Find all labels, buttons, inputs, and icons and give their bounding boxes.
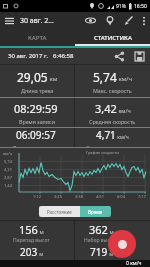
staticText: 4,31 (4, 167, 12, 172)
button[interactable]: 3,42 (75, 98, 150, 127)
staticText: Ср. скорость в движ. (86, 144, 139, 147)
staticText: км/ч (117, 107, 131, 114)
button[interactable] (108, 230, 136, 258)
staticText: 6:46:58 (53, 52, 74, 60)
staticText: км/ч (117, 75, 133, 83)
staticText: Длина трека (21, 87, 54, 94)
staticText: 7:17 (138, 194, 146, 199)
button[interactable]: Расстояние (39, 206, 80, 217)
staticText: 156 (19, 222, 38, 237)
staticText: м (108, 228, 114, 235)
staticText: 16:50 (134, 3, 147, 10)
staticText: КАРТА (28, 34, 47, 42)
staticText: 1:12 (33, 194, 41, 199)
button[interactable]: 08:29:59 (0, 98, 74, 127)
button[interactable]: 06:09:57 (0, 128, 74, 147)
button[interactable]: КАРТА (0, 29, 75, 46)
staticText: 3,42 (95, 101, 117, 116)
staticText: м (38, 228, 44, 235)
staticText: Время записи (19, 118, 56, 125)
button[interactable]: Время (80, 206, 111, 217)
button[interactable]: 29,05 (0, 65, 74, 97)
staticText: 203 (20, 245, 38, 259)
staticText: Макс. скорость (93, 87, 132, 94)
button[interactable]: 4,71 (75, 128, 150, 147)
staticText: Перепад высот (13, 237, 50, 244)
staticText: 719 (90, 245, 108, 259)
staticText: 30 авг. 2017 г. (8, 52, 48, 60)
button[interactable]: 362 (75, 221, 128, 260)
button[interactable] (134, 51, 145, 62)
button[interactable] (142, 16, 146, 26)
staticText: Средняя скорость (89, 118, 136, 125)
staticText: 08:29:59 (14, 101, 58, 116)
staticText: Набор высоты (84, 237, 119, 244)
staticText: 5,74 (4, 159, 12, 164)
staticText: 3:38 (75, 194, 83, 199)
staticText: 30 авг. 2… (20, 16, 54, 26)
staticText: 6:04 (117, 194, 125, 199)
staticText: Расстояние (47, 209, 72, 215)
button[interactable]: 30 авг. 2017 г. (8, 48, 145, 64)
staticText: График скорости (86, 150, 119, 155)
button[interactable] (85, 15, 96, 26)
staticText: 29,05 (17, 69, 48, 85)
button[interactable]: 5,74 (75, 65, 150, 97)
staticText: м (38, 251, 44, 258)
staticText: 2,87 (4, 175, 12, 180)
staticText: Время в движении (13, 144, 62, 147)
staticText: 06:09:57 (16, 128, 56, 142)
staticText: км/ч (116, 134, 129, 141)
button[interactable] (105, 16, 115, 26)
staticText: 362 (89, 222, 108, 237)
staticText: 4,71 (96, 128, 116, 142)
staticText: 0 км/ч (126, 260, 142, 267)
button[interactable]: 156 (0, 221, 63, 260)
staticText: км/ч (3, 151, 13, 156)
staticText: м (108, 251, 114, 258)
staticText: 91% (116, 3, 126, 10)
staticText: 1,44 (4, 183, 12, 188)
button[interactable] (5, 16, 14, 25)
staticText: СТАТИСТИКА (94, 34, 132, 42)
button[interactable] (124, 16, 134, 26)
staticText: Время (88, 209, 103, 215)
staticText: 4:51 (96, 194, 104, 199)
staticText: 2:25 (54, 194, 62, 199)
staticText: 5,74 (93, 69, 117, 85)
button[interactable] (114, 51, 125, 62)
staticText: км (48, 75, 58, 83)
button[interactable]: СТАТИСТИКА (75, 29, 150, 46)
